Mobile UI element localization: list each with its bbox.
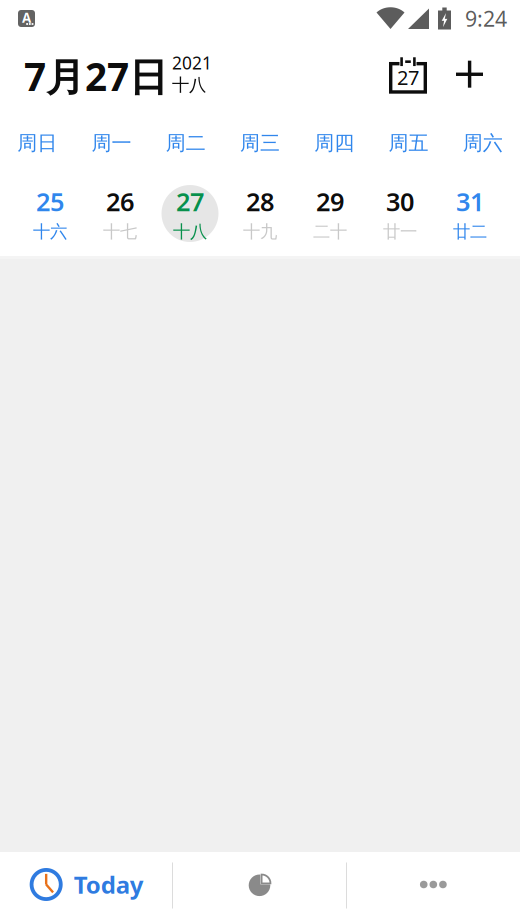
- staticText: 2021: [172, 51, 212, 74]
- staticText: Today: [74, 869, 144, 900]
- button[interactable]: Add event: [427, 61, 483, 102]
- staticText: 9:24: [465, 4, 507, 33]
- staticText: 周日: [17, 131, 57, 155]
- staticText: 26: [106, 184, 134, 218]
- staticText: 十七: [103, 221, 137, 242]
- staticText: 27: [397, 64, 419, 90]
- staticText: 十八: [173, 221, 207, 242]
- staticText: 十六: [33, 221, 67, 242]
- staticText: 27: [176, 184, 204, 218]
- staticText: 十九: [243, 221, 277, 242]
- button[interactable]: Today: [0, 849, 173, 919]
- staticText: 28: [246, 184, 274, 218]
- button[interactable]: 29: [295, 171, 365, 256]
- staticText: 廿二: [453, 221, 487, 242]
- staticText: 周五: [389, 131, 429, 155]
- staticText: 31: [456, 184, 484, 218]
- staticText: 二十: [313, 221, 347, 242]
- button[interactable]: More: [347, 849, 520, 919]
- staticText: 周一: [91, 131, 131, 155]
- button[interactable]: 27: [155, 171, 225, 256]
- button[interactable]: 30: [365, 171, 435, 256]
- staticText: 十八: [172, 74, 206, 96]
- button[interactable]: Go to date: [389, 56, 427, 102]
- staticText: 29: [316, 184, 344, 218]
- button[interactable]: 28: [225, 171, 295, 256]
- staticText: 25: [36, 184, 64, 218]
- button[interactable]: 31: [435, 171, 505, 256]
- staticText: 周二: [166, 131, 206, 155]
- staticText: 周四: [314, 131, 354, 155]
- staticText: 7月27日: [24, 50, 168, 102]
- staticText: 30: [386, 184, 414, 218]
- button[interactable]: 26: [85, 171, 155, 256]
- staticText: A: [22, 9, 31, 26]
- button[interactable]: 25: [15, 171, 85, 256]
- staticText: 周六: [463, 131, 503, 155]
- staticText: 周三: [240, 131, 280, 155]
- button[interactable]: Statistics: [173, 849, 347, 919]
- staticText: 廿一: [383, 221, 417, 242]
